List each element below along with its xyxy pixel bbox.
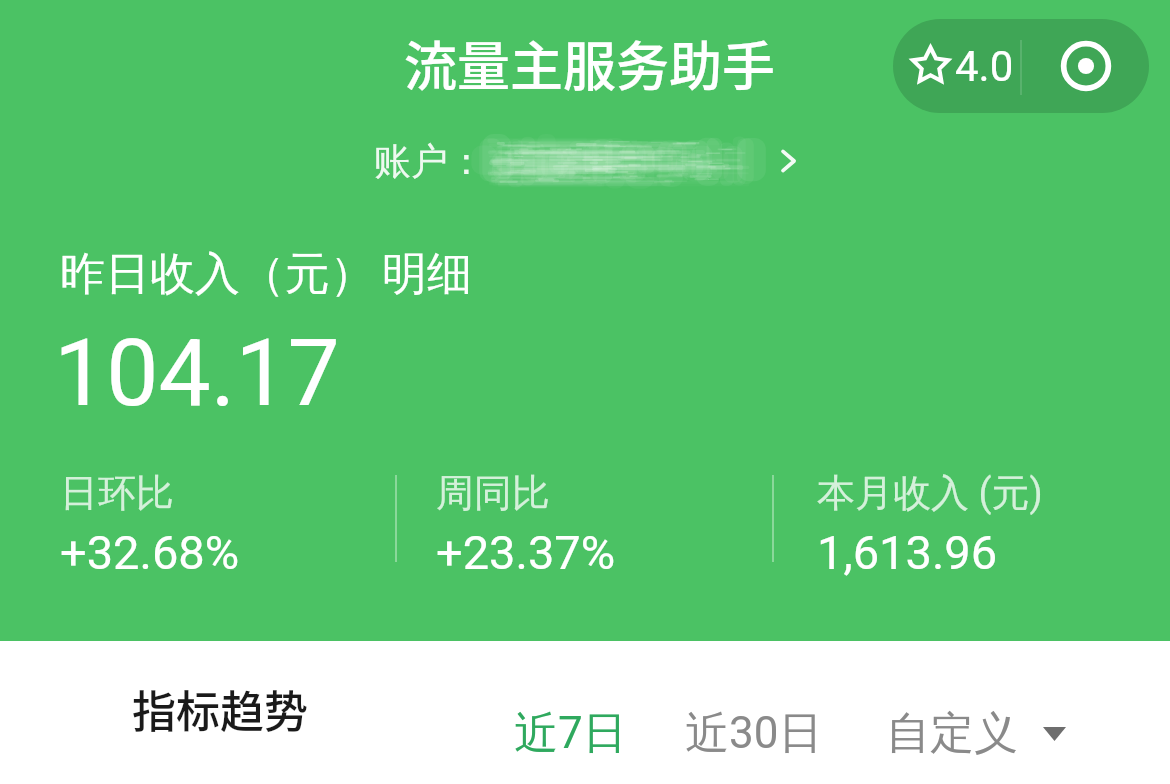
- button[interactable]: More: [1023, 19, 1149, 113]
- staticText: 昨日收入（元）: [60, 246, 375, 303]
- staticText: +32.68%: [60, 525, 240, 580]
- button[interactable]: Expand: [1036, 716, 1072, 752]
- staticText: 账户：: [374, 138, 485, 185]
- staticText: 4.0: [955, 42, 1014, 91]
- button[interactable]: 近30日: [685, 706, 823, 761]
- button[interactable]: 明细: [382, 246, 472, 303]
- button[interactable]: 自定义: [886, 706, 1018, 761]
- staticText: 本月收入 (元): [817, 469, 1043, 517]
- button[interactable]: 近7日: [514, 706, 627, 761]
- staticText: 日环比: [60, 469, 174, 517]
- staticText: 周同比: [436, 469, 550, 517]
- button[interactable]: 账户：: [370, 126, 802, 198]
- staticText: 指标趋势: [132, 677, 308, 741]
- staticText: +23.37%: [436, 525, 616, 580]
- button[interactable]: Rating 4.0: [893, 19, 1021, 113]
- staticText: 104.17: [54, 319, 340, 428]
- staticText: 流量主服务助手: [404, 25, 775, 102]
- staticText: 1,613.96: [817, 525, 998, 580]
